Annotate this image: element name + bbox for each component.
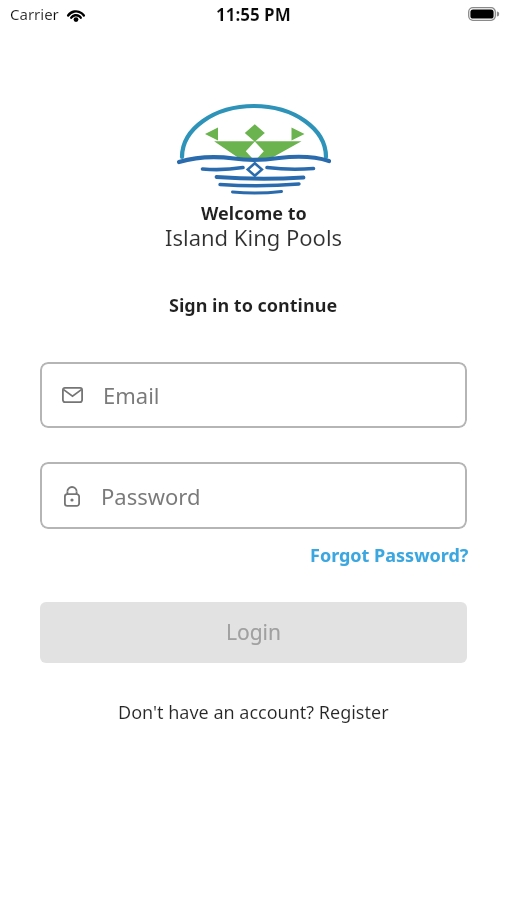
- staticText: Island King Pools: [165, 222, 343, 252]
- button[interactable]: Don't have an account? Register: [118, 700, 389, 725]
- button[interactable]: Forgot Password?: [310, 543, 469, 568]
- staticText: Password: [101, 481, 201, 511]
- staticText: 11:55 PM: [216, 3, 291, 26]
- staticText: Don't have an account? Register: [118, 700, 389, 725]
- staticText: Login: [226, 618, 282, 647]
- button[interactable]: Email: [40, 362, 467, 428]
- button[interactable]: Password: [40, 462, 467, 529]
- staticText: Sign in to continue: [169, 293, 338, 318]
- button[interactable]: Login: [40, 602, 467, 663]
- staticText: Carrier: [10, 4, 59, 24]
- staticText: Email: [103, 380, 160, 410]
- staticText: Welcome to: [201, 201, 307, 226]
- staticText: Forgot Password?: [310, 543, 469, 568]
